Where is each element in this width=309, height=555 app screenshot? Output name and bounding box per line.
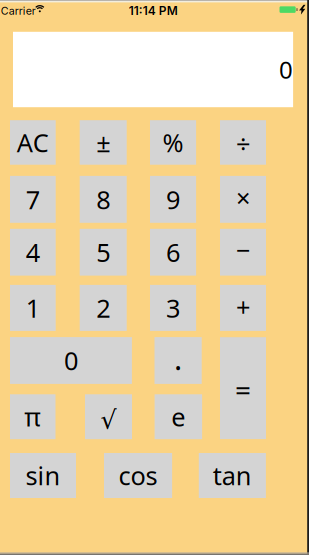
staticText: tan [213, 459, 252, 492]
button[interactable]: × [220, 176, 266, 223]
staticText: 1 [26, 291, 40, 325]
staticText: = [235, 371, 251, 408]
button[interactable]: % [150, 120, 196, 165]
staticText: % [163, 126, 184, 159]
button[interactable]: + [220, 285, 266, 331]
staticText: 0 [279, 54, 293, 85]
staticText: . [174, 338, 182, 379]
button[interactable]: 8 [80, 176, 127, 223]
staticText: 7 [26, 182, 40, 216]
button[interactable]: 1 [10, 285, 56, 331]
staticText: 6 [166, 235, 180, 269]
button[interactable]: e [155, 394, 202, 439]
button[interactable]: 0 [10, 337, 132, 384]
staticText: 11:14 PM [129, 3, 178, 18]
staticText: 0 [64, 344, 78, 377]
staticText: ÷ [236, 127, 250, 160]
staticText: e [171, 400, 185, 433]
button[interactable]: sin [10, 453, 76, 498]
button[interactable]: 4 [10, 229, 56, 276]
staticText: 2 [96, 291, 110, 325]
staticText: 9 [166, 182, 180, 216]
button[interactable]: 7 [10, 176, 56, 223]
staticText: √ [100, 405, 116, 434]
button[interactable]: = [220, 337, 266, 439]
button[interactable]: ± [80, 120, 127, 165]
button[interactable]: 5 [80, 229, 127, 276]
staticText: + [236, 290, 250, 324]
button[interactable]: 6 [150, 229, 196, 276]
button[interactable]: 9 [150, 176, 196, 223]
staticText: sin [25, 459, 60, 492]
staticText: 3 [166, 291, 180, 325]
button[interactable]: 3 [150, 285, 196, 331]
button[interactable]: ÷ [220, 120, 266, 165]
staticText: Carrier [1, 4, 36, 17]
staticText: − [236, 233, 250, 267]
staticText: π [24, 400, 41, 433]
button[interactable]: tan [199, 453, 266, 498]
button[interactable]: π [10, 394, 55, 439]
staticText: × [236, 181, 250, 214]
button[interactable]: √ [85, 394, 132, 439]
staticText: AC [17, 126, 49, 159]
button[interactable]: AC [10, 120, 56, 165]
staticText: 5 [96, 235, 110, 269]
button[interactable]: 2 [80, 285, 127, 331]
staticText: 8 [96, 182, 110, 216]
button[interactable]: . [154, 337, 202, 384]
button[interactable]: cos [104, 453, 172, 498]
staticText: ± [96, 126, 110, 159]
staticText: 4 [26, 235, 40, 269]
staticText: cos [119, 459, 158, 492]
button[interactable]: − [220, 229, 266, 276]
